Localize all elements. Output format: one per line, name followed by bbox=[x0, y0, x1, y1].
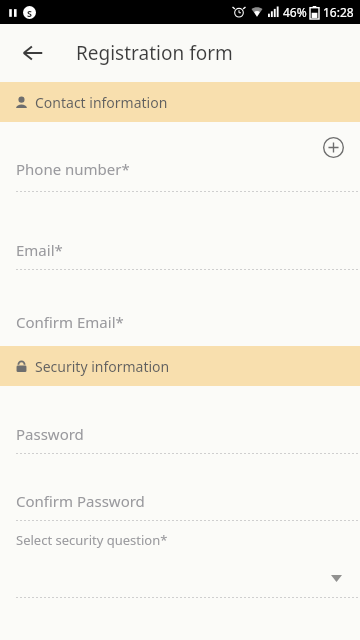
staticText: Confirm Email* bbox=[16, 312, 124, 332]
staticText: 16:28 bbox=[323, 4, 354, 20]
staticText: Registration form bbox=[76, 40, 233, 66]
button[interactable]: Phone number* bbox=[0, 156, 360, 182]
button[interactable]: Confirm Password bbox=[0, 491, 360, 511]
staticText: Contact information bbox=[35, 93, 168, 112]
button[interactable]: Open security question dropdown bbox=[0, 567, 360, 589]
staticText: S bbox=[27, 7, 32, 19]
staticText: Password bbox=[16, 424, 84, 444]
button[interactable]: Back bbox=[10, 30, 56, 76]
staticText: 46% bbox=[283, 4, 307, 20]
button[interactable]: Security information bbox=[0, 346, 360, 386]
staticText: Phone number* bbox=[16, 159, 130, 179]
staticText: Email* bbox=[16, 240, 63, 260]
button[interactable]: Email* bbox=[0, 240, 360, 260]
button[interactable]: Password bbox=[0, 424, 360, 444]
button[interactable]: Contact information bbox=[0, 82, 360, 122]
staticText: Select security question* bbox=[16, 531, 168, 549]
button[interactable]: Add phone number bbox=[320, 134, 346, 160]
staticText: Confirm Password bbox=[16, 491, 145, 511]
staticText: Security information bbox=[35, 357, 170, 376]
